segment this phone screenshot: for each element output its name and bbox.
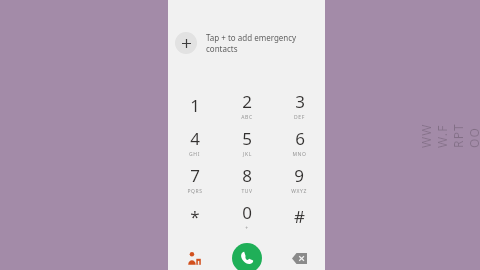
- button[interactable]: 0: [221, 198, 273, 235]
- staticText: 2: [242, 90, 252, 113]
- staticText: Tap + to add emergency contacts: [206, 32, 325, 54]
- staticText: 5: [242, 127, 252, 150]
- button[interactable]: Backspace: [273, 238, 325, 270]
- button[interactable]: 4: [168, 124, 221, 161]
- button[interactable]: Call: [232, 243, 262, 270]
- staticText: 7: [190, 164, 200, 187]
- button[interactable]: 2: [221, 87, 273, 124]
- button[interactable]: Emergency information: [168, 238, 221, 270]
- staticText: 4: [190, 127, 200, 150]
- staticText: 8: [242, 164, 252, 187]
- button[interactable]: *: [168, 198, 221, 235]
- other: Add emergency contact: [175, 32, 197, 54]
- button[interactable]: 7: [168, 161, 221, 198]
- staticText: WXYZ: [291, 188, 307, 195]
- staticText: 3: [295, 90, 305, 113]
- button[interactable]: 5: [221, 124, 273, 161]
- staticText: JKL: [243, 151, 252, 158]
- button[interactable]: 8: [221, 161, 273, 198]
- button[interactable]: 1: [168, 87, 221, 124]
- staticText: #: [294, 205, 305, 228]
- button[interactable]: 3: [273, 87, 325, 124]
- staticText: GHI: [189, 151, 200, 158]
- button[interactable]: Add emergency contact: [168, 25, 325, 61]
- staticText: 1: [190, 94, 200, 117]
- staticText: 6: [295, 127, 305, 150]
- staticText: *: [190, 205, 200, 228]
- staticText: PQRS: [187, 188, 203, 195]
- button[interactable]: 9: [273, 161, 325, 198]
- staticText: ABC: [241, 114, 253, 121]
- staticText: 0: [242, 201, 252, 224]
- staticText: 9: [294, 164, 304, 187]
- button[interactable]: 6: [273, 124, 325, 161]
- button[interactable]: #: [273, 198, 325, 235]
- staticText: MNO: [292, 151, 307, 158]
- staticText: +: [245, 225, 249, 232]
- staticText: TUV: [241, 188, 253, 195]
- staticText: WWW.FRPTOOL.COM: [418, 122, 480, 148]
- staticText: DEF: [294, 114, 305, 121]
